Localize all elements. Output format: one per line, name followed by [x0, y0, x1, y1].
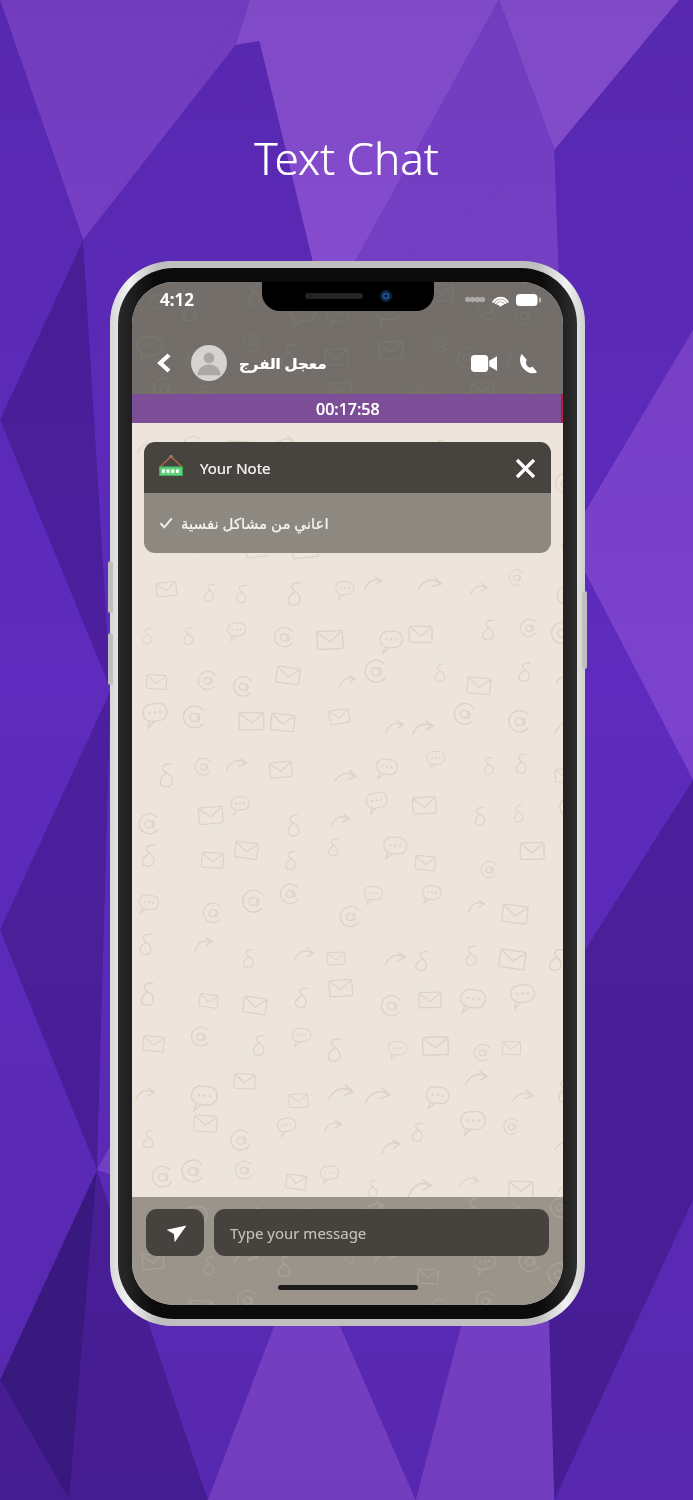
staticText: Type your message [230, 1223, 367, 1243]
button[interactable]: Your Note [144, 442, 551, 553]
button[interactable]: Type your message [214, 1209, 549, 1256]
staticText: 4:12 [160, 288, 194, 311]
button[interactable]: معجل الفرج [191, 345, 465, 381]
staticText: Text Chat [0, 128, 693, 188]
staticText: اعاني من مشاكل نفسية [181, 513, 329, 533]
button[interactable]: Back [148, 346, 182, 380]
button[interactable]: Video call [465, 344, 503, 382]
staticText: 00:17:58 [316, 398, 380, 420]
staticText: Your Note [200, 458, 509, 478]
button[interactable]: Send [146, 1209, 204, 1256]
button[interactable]: Close note [509, 452, 541, 484]
button[interactable]: Voice call [509, 344, 547, 382]
staticText: معجل الفرج [239, 353, 327, 373]
